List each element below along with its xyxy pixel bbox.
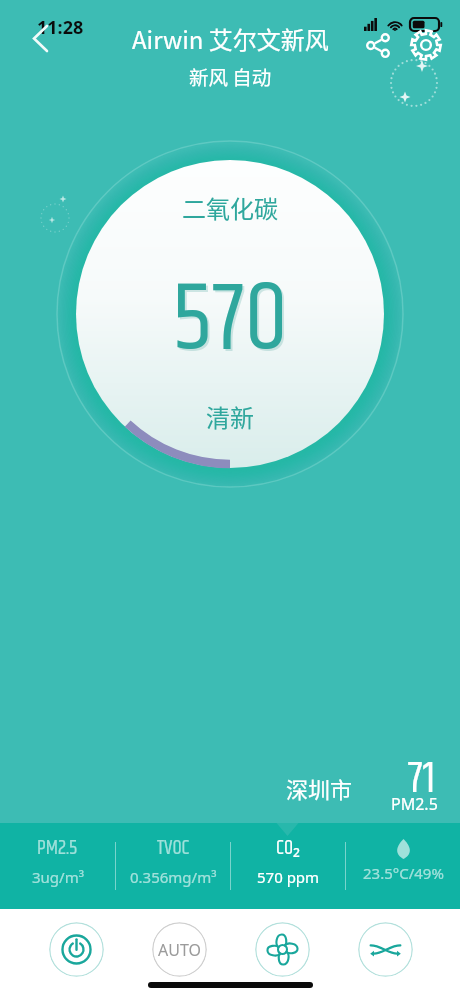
button[interactable]: Power [49, 922, 104, 977]
staticText: 570 ppm [257, 867, 320, 887]
button[interactable]: Swing [358, 922, 413, 977]
staticText: PM2.5 [391, 793, 438, 815]
staticText: 3ug/m³ [32, 867, 84, 887]
button[interactable]: TVOC [116, 823, 230, 909]
staticText: PM2.5 [37, 833, 78, 864]
staticText: 570 [172, 247, 288, 395]
button[interactable]: AUTO [152, 922, 207, 977]
button[interactable]: Share [361, 28, 395, 62]
staticText: 二氧化碳 [182, 190, 278, 225]
staticText: 新风 自动 [189, 62, 272, 90]
staticText: 深圳市 [286, 772, 353, 804]
staticText: 23.5°C/49% [363, 863, 444, 883]
staticText: 71 [408, 745, 436, 814]
button[interactable]: Fan speed [255, 922, 310, 977]
staticText: 570 [174, 249, 290, 397]
staticText: CO₂ [276, 833, 301, 864]
button[interactable]: 23.5°C/49% [346, 823, 460, 909]
staticText: 0.356mg/m³ [130, 867, 217, 887]
button[interactable]: PM2.5 [0, 823, 115, 909]
staticText: TVOC [157, 833, 190, 864]
button[interactable]: CO₂ [231, 823, 345, 909]
staticText: 清新 [206, 399, 254, 434]
staticText: Airwin 艾尔文新风 [132, 21, 329, 56]
button[interactable]: Back [19, 19, 61, 61]
staticText: AUTO [158, 939, 201, 961]
staticText: 11:28 [37, 15, 84, 40]
button[interactable]: Settings [407, 26, 445, 64]
